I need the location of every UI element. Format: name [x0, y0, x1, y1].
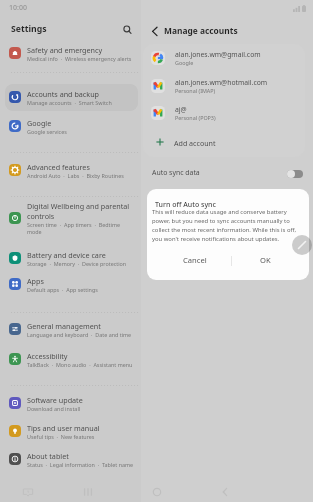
button[interactable]: alan.jones.wm@gmail.com — [143, 45, 305, 71]
staticText: Screen time · App timers · Bedtime — [27, 221, 120, 228]
button[interactable]: Cancel — [164, 249, 226, 271]
button[interactable]: Auto sync data — [141, 161, 313, 187]
button[interactable]: About tablet — [5, 446, 138, 472]
button[interactable]: Edge panel handle — [292, 235, 312, 255]
staticText: General management — [27, 321, 101, 331]
staticText: This will reduce data usage and conserve… — [152, 208, 302, 243]
staticText: Manage accounts — [164, 25, 238, 36]
staticText: Personal (IMAP) — [175, 87, 216, 94]
button[interactable]: Software update — [5, 390, 138, 416]
staticText: Google — [175, 59, 194, 66]
staticText: Settings — [11, 23, 47, 35]
staticText: Default apps · App settings — [27, 286, 98, 293]
staticText: Personal (POP3) — [175, 114, 216, 121]
staticText: Medical info · Wireless emergency alerts — [27, 55, 132, 62]
staticText: Tips and user manual — [27, 423, 100, 433]
staticText: Safety and emergency — [27, 45, 103, 55]
staticText: Auto sync data — [152, 168, 200, 177]
button[interactable]: Battery and device care — [5, 245, 138, 271]
button[interactable]: Recent apps — [82, 486, 94, 498]
staticText: Google services — [27, 128, 67, 135]
button[interactable]: OK — [234, 249, 296, 271]
staticText: aj@ — [175, 105, 187, 114]
staticText: Useful tips · New features — [27, 433, 95, 440]
button[interactable]: Safety and emergency — [5, 40, 138, 66]
button[interactable]: Digital Wellbeing and parental — [5, 198, 138, 238]
button[interactable]: Tips and user manual — [5, 418, 138, 444]
button[interactable]: Google — [5, 113, 138, 139]
staticText: Cancel — [183, 255, 207, 265]
button[interactable]: Advanced features — [5, 157, 138, 183]
staticText: Software update — [27, 395, 83, 405]
staticText: mode — [27, 228, 42, 235]
button[interactable]: General management — [5, 316, 138, 342]
staticText: OK — [260, 255, 271, 265]
staticText: Status · Legal information · Tablet name — [27, 461, 134, 468]
button[interactable]: alan.jones.wm@hotmail.com — [143, 73, 305, 99]
staticText: alan.jones.wm@hotmail.com — [175, 78, 268, 87]
staticText: 10:00 — [9, 3, 27, 13]
button[interactable]: Back — [219, 486, 231, 498]
button[interactable]: Accounts and backup — [5, 84, 138, 110]
staticText: Accounts and backup — [27, 89, 99, 99]
button[interactable]: Search — [119, 21, 135, 37]
staticText: Android Auto · Labs · Bixby Routines — [27, 172, 124, 179]
staticText: Advanced features — [27, 162, 90, 172]
staticText: Digital Wellbeing and parental — [27, 201, 130, 211]
button[interactable]: Home — [151, 486, 163, 498]
staticText: About tablet — [27, 451, 69, 461]
staticText: Apps — [27, 276, 44, 286]
staticText: Manage accounts · Smart Switch — [27, 99, 112, 106]
staticText: Storage · Memory · Device protection — [27, 260, 127, 267]
staticText: TalkBack · Mono audio · Assistant menu — [27, 361, 133, 368]
staticText: Language and keyboard · Date and time — [27, 331, 132, 338]
button[interactable]: Back — [147, 23, 163, 39]
staticText: Add account — [174, 138, 216, 148]
button[interactable]: Add account — [143, 129, 305, 155]
button[interactable]: Show keyboard — [22, 486, 34, 498]
staticText: Battery and device care — [27, 250, 106, 260]
staticText: Accessibility — [27, 351, 68, 361]
button[interactable]: Accessibility — [5, 346, 138, 372]
staticText: alan.jones.wm@gmail.com — [175, 50, 261, 59]
staticText: controls — [27, 211, 55, 221]
staticText: Google — [27, 118, 52, 128]
button[interactable]: aj@ — [143, 100, 305, 126]
staticText: Turn off Auto sync — [155, 200, 216, 210]
staticText: Download and install — [27, 405, 81, 412]
button[interactable]: Apps — [5, 271, 138, 297]
